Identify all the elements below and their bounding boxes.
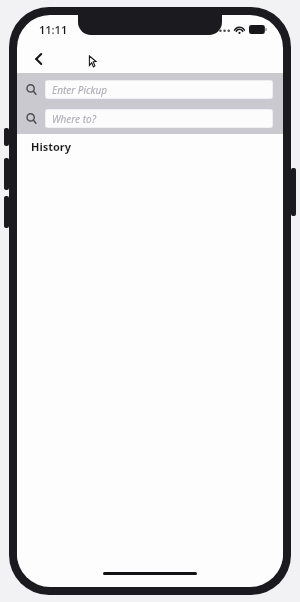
staticText: Enter Pickup xyxy=(52,83,108,97)
button[interactable]: Where to? xyxy=(17,107,283,129)
button[interactable]: Back xyxy=(25,45,53,73)
staticText: 11:11 xyxy=(39,22,68,37)
staticText: History xyxy=(31,139,72,154)
button[interactable]: Enter Pickup xyxy=(17,78,283,100)
staticText: Where to? xyxy=(52,112,96,126)
